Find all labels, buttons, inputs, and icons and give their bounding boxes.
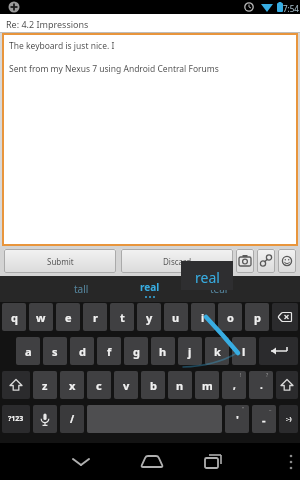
button[interactable] <box>257 249 275 273</box>
staticText: b <box>150 378 157 393</box>
button[interactable]: q <box>2 303 26 331</box>
staticText: r <box>93 310 98 325</box>
staticText: . <box>260 378 263 392</box>
staticText: tall <box>74 282 89 296</box>
staticText: / <box>70 412 75 426</box>
button[interactable]: v <box>114 371 138 399</box>
button[interactable]: :-) <box>279 405 298 433</box>
staticText: y <box>146 310 153 325</box>
button[interactable]: ?123 <box>2 405 30 433</box>
button[interactable]: tall <box>50 276 112 302</box>
button[interactable]: g <box>124 337 148 365</box>
staticText: ?123 <box>8 414 24 424</box>
button[interactable]: y <box>137 303 161 331</box>
button[interactable]: x <box>60 371 84 399</box>
staticText: _ <box>269 405 272 412</box>
staticText: z <box>42 378 48 393</box>
button[interactable]: u <box>164 303 188 331</box>
button[interactable]: o <box>218 303 242 331</box>
button[interactable]: . <box>249 371 273 399</box>
staticText: :-) <box>286 415 292 423</box>
staticText: real <box>195 268 220 287</box>
button[interactable] <box>135 446 165 476</box>
button[interactable]: teal <box>188 276 250 302</box>
button[interactable]: i <box>191 303 215 331</box>
button[interactable] <box>276 371 298 399</box>
button[interactable] <box>278 249 296 273</box>
button[interactable]: l <box>232 337 256 365</box>
button[interactable]: ' <box>225 405 249 433</box>
staticText: g <box>133 344 140 359</box>
staticText: v <box>123 378 130 393</box>
button[interactable]: f <box>97 337 121 365</box>
staticText: 7:54 <box>283 3 299 14</box>
button[interactable]: The keyboard is just nice. I <box>2 33 298 246</box>
button[interactable]: a <box>16 337 40 365</box>
button[interactable] <box>236 249 254 273</box>
staticText: , <box>233 378 236 392</box>
staticText: l <box>242 344 246 359</box>
button[interactable]: real <box>119 276 181 302</box>
staticText: Sent from my Nexus 7 using Android Centr… <box>9 63 219 75</box>
button[interactable]: Submit <box>4 249 116 273</box>
staticText: a <box>25 344 32 359</box>
button[interactable]: n <box>168 371 192 399</box>
staticText: t <box>120 310 125 325</box>
staticText: q <box>11 310 18 325</box>
button[interactable] <box>33 405 57 433</box>
staticText: ' <box>236 412 239 427</box>
staticText: m <box>202 378 213 393</box>
staticText: k <box>214 344 221 359</box>
button[interactable]: e <box>56 303 80 331</box>
button[interactable]: b <box>141 371 165 399</box>
button[interactable]: s <box>43 337 67 365</box>
staticText: w <box>36 310 46 325</box>
staticText: f <box>107 344 112 359</box>
staticText: real <box>140 280 160 294</box>
staticText: e <box>65 310 72 325</box>
staticText: d <box>79 344 86 359</box>
staticText: p <box>254 310 261 325</box>
button[interactable]: w <box>29 303 53 331</box>
button[interactable]: d <box>70 337 94 365</box>
button[interactable]: - <box>252 405 276 433</box>
staticText: h <box>159 344 167 359</box>
staticText: j <box>188 344 192 359</box>
staticText: i <box>201 310 205 325</box>
staticText: ? <box>266 372 269 379</box>
button[interactable] <box>259 337 298 365</box>
staticText: " <box>242 406 245 413</box>
staticText: ! <box>240 372 242 379</box>
button[interactable] <box>272 303 298 331</box>
staticText: o <box>227 310 234 325</box>
staticText: The keyboard is just nice. I <box>9 40 115 52</box>
staticText: s <box>52 344 58 359</box>
button[interactable]: k <box>205 337 229 365</box>
button[interactable]: Re: 4.2 Impressions <box>0 14 300 33</box>
button[interactable] <box>200 446 230 476</box>
staticText: Re: 4.2 Impressions <box>6 18 89 30</box>
button[interactable]: Discard <box>121 249 233 273</box>
button[interactable] <box>66 446 96 476</box>
button[interactable]: p <box>245 303 269 331</box>
staticText: c <box>96 378 102 393</box>
staticText: Discard <box>163 256 192 267</box>
button[interactable]: r <box>83 303 107 331</box>
staticText: x <box>69 378 76 393</box>
staticText: - <box>262 412 266 427</box>
button[interactable]: z <box>33 371 57 399</box>
staticText: u <box>172 310 180 325</box>
button[interactable]: j <box>178 337 202 365</box>
staticText: teal <box>210 282 228 296</box>
button[interactable]: , <box>222 371 246 399</box>
button[interactable]: / <box>60 405 84 433</box>
staticText: Submit <box>47 256 74 267</box>
button[interactable] <box>2 371 30 399</box>
button[interactable]: c <box>87 371 111 399</box>
button[interactable]: t <box>110 303 134 331</box>
staticText: n <box>176 378 184 393</box>
button[interactable]: m <box>195 371 219 399</box>
button[interactable]: h <box>151 337 175 365</box>
